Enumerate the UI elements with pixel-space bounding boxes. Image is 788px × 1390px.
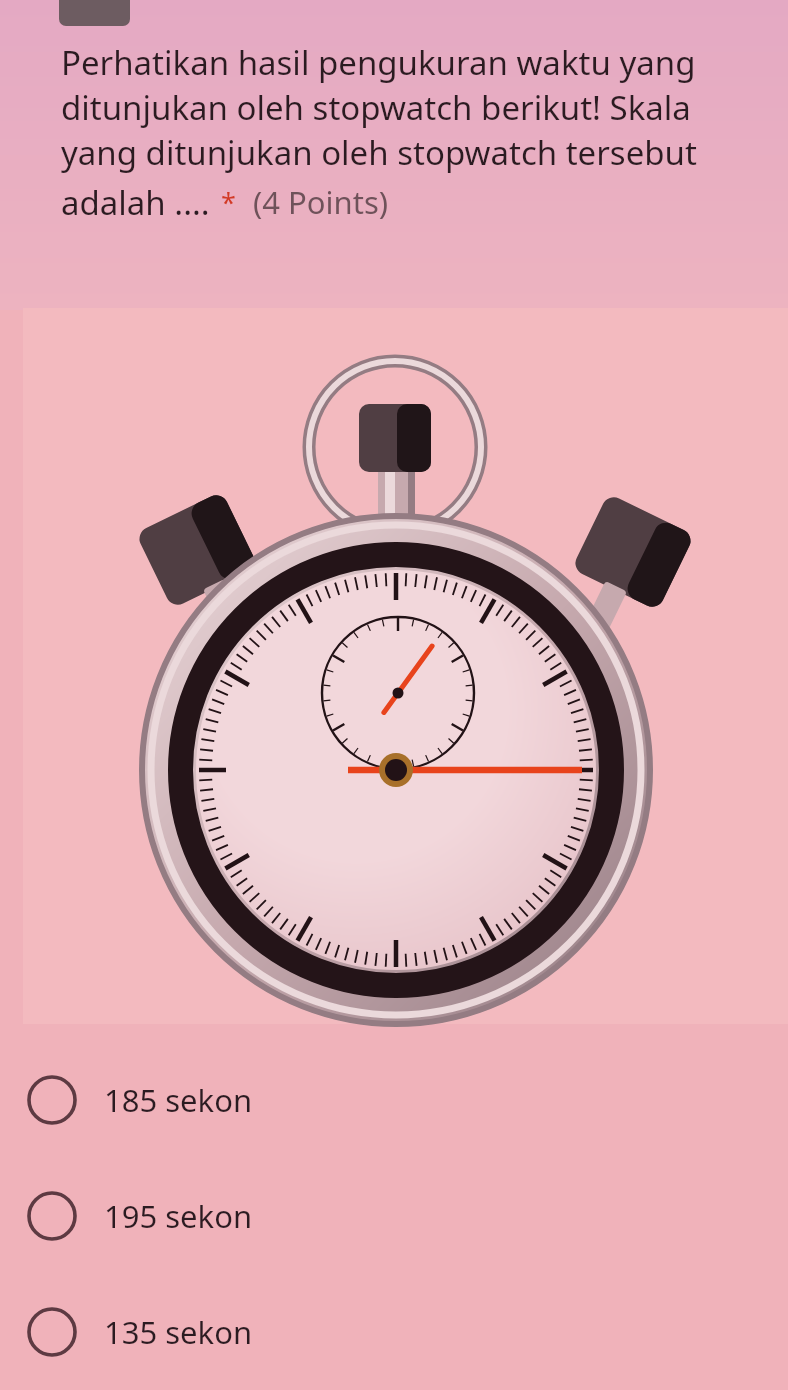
staticText: 195 sekon (104, 1195, 253, 1237)
staticText: 185 sekon (104, 1079, 253, 1121)
button[interactable]: 195 sekon (0, 1178, 788, 1254)
staticText: (4 Points) (253, 181, 389, 223)
staticText: Perhatikan hasil pengukuran waktu yang (61, 40, 696, 85)
button[interactable] (23, 308, 788, 1024)
staticText: adalah .... (61, 180, 210, 225)
staticText: * (221, 184, 236, 221)
staticText: 135 sekon (104, 1311, 253, 1353)
button[interactable]: 135 sekon (0, 1294, 788, 1370)
staticText: ditunjukan oleh stopwatch berikut! Skala (61, 85, 691, 130)
button[interactable]: 185 sekon (0, 1062, 788, 1138)
staticText: yang ditunjukan oleh stopwatch tersebut (61, 130, 697, 175)
